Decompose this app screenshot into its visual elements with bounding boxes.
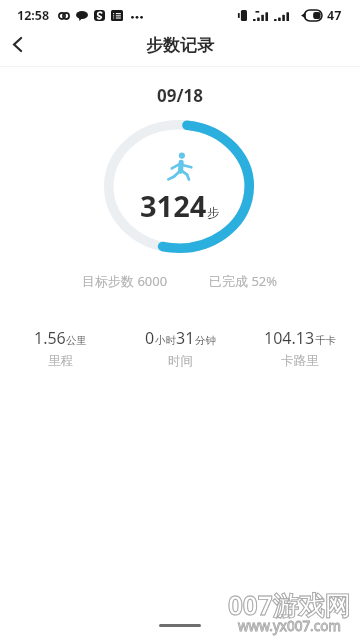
staticText: 步数记录: [146, 35, 214, 56]
staticText: 分钟: [195, 334, 216, 347]
staticText: 时间: [168, 353, 193, 369]
staticText: 千卡: [315, 334, 336, 347]
staticText: 3124: [140, 186, 207, 225]
staticText: 007游戏网: [228, 587, 351, 623]
staticText: 104.13: [264, 327, 315, 349]
staticText: 31: [176, 327, 195, 349]
staticText: 0: [145, 327, 155, 349]
staticText: 里程: [48, 353, 73, 369]
staticText: 公里: [66, 334, 87, 347]
staticText: 47: [327, 7, 342, 24]
staticText: 已完成 52%: [209, 272, 278, 290]
staticText: www.yx007.com: [238, 617, 341, 635]
staticText: 12:58: [17, 7, 50, 24]
staticText: 步: [207, 205, 220, 221]
staticText: 小时: [155, 334, 176, 347]
staticText: 09/18: [0, 84, 360, 107]
staticText: 1.56: [34, 327, 66, 349]
button[interactable]: Back: [0, 27, 34, 61]
staticText: 目标步数 6000: [82, 272, 168, 290]
staticText: 卡路里: [281, 353, 319, 369]
